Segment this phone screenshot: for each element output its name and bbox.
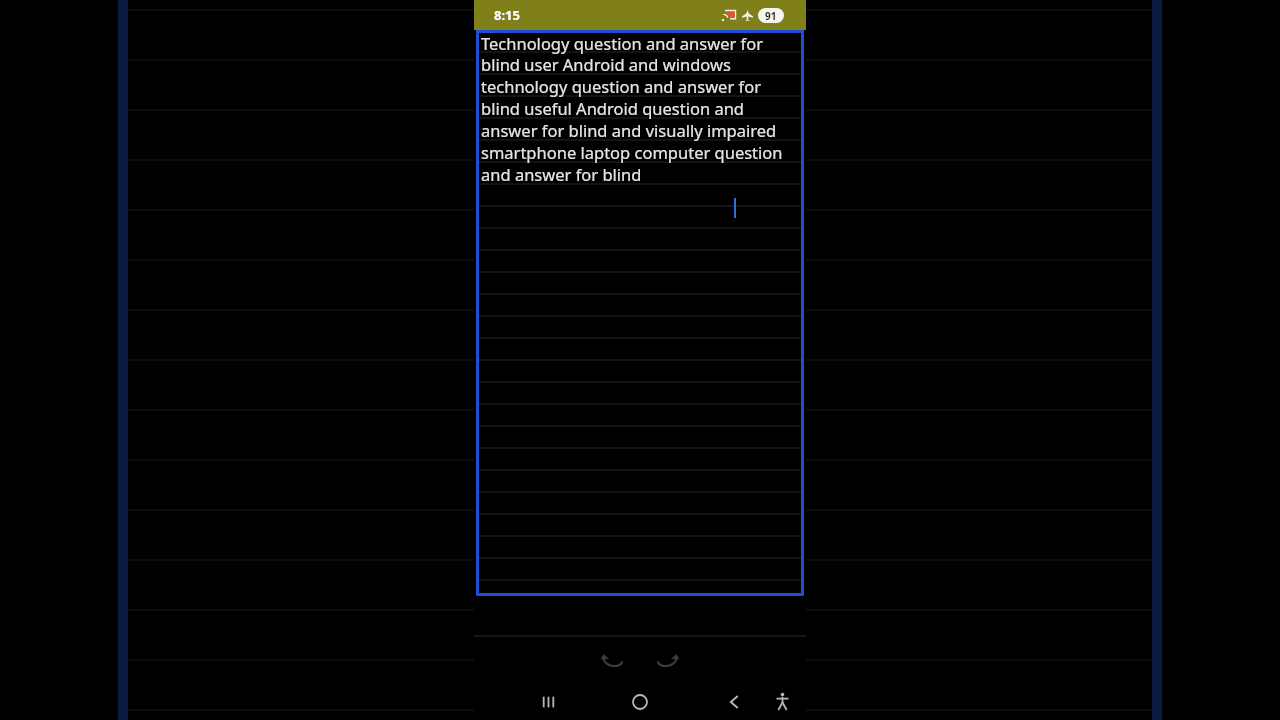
button[interactable]: Undo	[589, 637, 635, 683]
button[interactable]: Back	[712, 683, 756, 720]
staticText: 8:15	[494, 6, 520, 24]
button[interactable]: Home	[618, 683, 662, 720]
button[interactable]: Technology question and answer for blind…	[476, 30, 804, 596]
button[interactable]: Redo	[645, 637, 691, 683]
staticText: 91	[765, 9, 777, 23]
button[interactable]: Accessibility	[760, 683, 804, 720]
button[interactable]: Recent apps	[526, 683, 570, 720]
staticText: Technology question and answer for blind…	[481, 32, 800, 186]
